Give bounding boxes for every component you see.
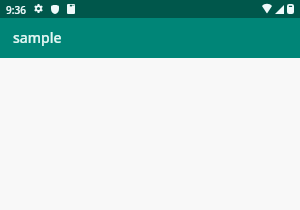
- other: Battery: [287, 4, 294, 14]
- button[interactable]: sample: [0, 18, 300, 58]
- staticText: sample: [13, 28, 62, 47]
- other: Mobile signal: [275, 5, 284, 14]
- staticText: 9:36: [6, 3, 26, 17]
- other: Screenshot notification: [67, 4, 75, 14]
- other: Security notification: [51, 5, 59, 14]
- other: Settings notification: [34, 4, 43, 13]
- other: Wi-Fi signal: [262, 4, 272, 13]
